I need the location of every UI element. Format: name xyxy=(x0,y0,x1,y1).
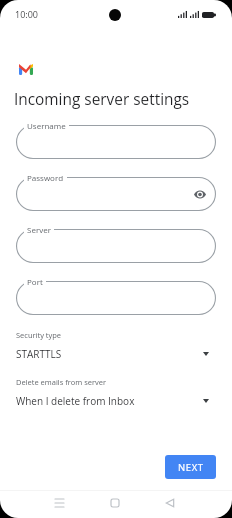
staticText: Server xyxy=(27,224,51,235)
button[interactable]: Home xyxy=(101,489,129,517)
button[interactable]: Back xyxy=(156,489,184,517)
button[interactable]: Port xyxy=(16,281,216,315)
staticText: Port xyxy=(27,276,43,287)
button[interactable]: Show password xyxy=(191,186,208,203)
staticText: Delete emails from server xyxy=(16,377,107,387)
staticText: 10:00 xyxy=(15,8,38,20)
button[interactable]: Password xyxy=(16,177,216,211)
button[interactable]: Server xyxy=(16,229,216,263)
staticText: Security type xyxy=(16,330,62,340)
staticText: Incoming server settings xyxy=(14,89,190,110)
staticText: NEXT xyxy=(178,461,204,474)
staticText: Username xyxy=(27,120,66,131)
button[interactable]: Recents xyxy=(45,489,73,517)
staticText: When I delete from Inbox xyxy=(16,394,135,408)
staticText: Password xyxy=(27,172,64,183)
button[interactable]: Security type xyxy=(0,330,232,362)
staticText: STARTTLS xyxy=(16,347,62,361)
button[interactable]: Username xyxy=(16,125,216,159)
button[interactable]: NEXT xyxy=(165,455,216,479)
button[interactable]: Delete emails from server xyxy=(0,377,232,409)
